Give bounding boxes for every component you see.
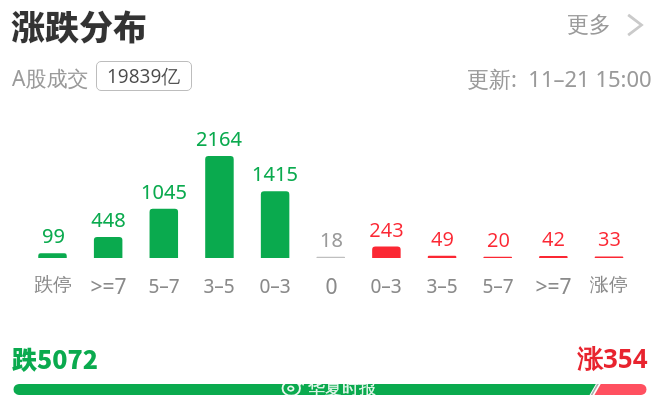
staticText: >=7 [90, 272, 127, 301]
staticText: >=7 [535, 272, 572, 301]
staticText: 0–3 [259, 273, 291, 299]
staticText: 0 [325, 272, 338, 301]
staticText: 5–7 [148, 273, 180, 299]
staticText: A股成交 [12, 64, 89, 93]
staticText: 3–5 [426, 273, 458, 299]
staticText: 涨停 [590, 273, 628, 297]
staticText: 42 [542, 225, 565, 252]
staticText: 19839亿 [107, 63, 181, 89]
staticText: 跌停 [34, 273, 72, 297]
staticText: 49 [431, 225, 454, 252]
staticText: 更多 [567, 11, 611, 39]
button[interactable]: 19839亿 [96, 61, 192, 91]
staticText: 5–7 [482, 273, 514, 299]
staticText: 20 [487, 226, 510, 253]
button[interactable]: 更多 [561, 6, 649, 45]
staticText: 33 [598, 225, 621, 252]
staticText: 跌5072 [12, 340, 98, 376]
staticText: 涨354 [577, 340, 648, 376]
staticText: 涨跌分布 [11, 1, 147, 50]
staticText: 1415 [252, 160, 298, 187]
staticText: 2164 [196, 125, 242, 152]
other: More [611, 12, 640, 38]
staticText: 18 [320, 226, 343, 253]
staticText: 99 [42, 222, 65, 249]
staticText: 448 [91, 206, 126, 233]
staticText: 更新: 11–21 15:00 [467, 63, 652, 93]
staticText: 1045 [141, 178, 187, 205]
staticText: 243 [369, 216, 404, 243]
staticText: 华夏时报 [308, 378, 376, 399]
staticText: 0–3 [370, 273, 402, 299]
staticText: 3–5 [203, 273, 235, 299]
